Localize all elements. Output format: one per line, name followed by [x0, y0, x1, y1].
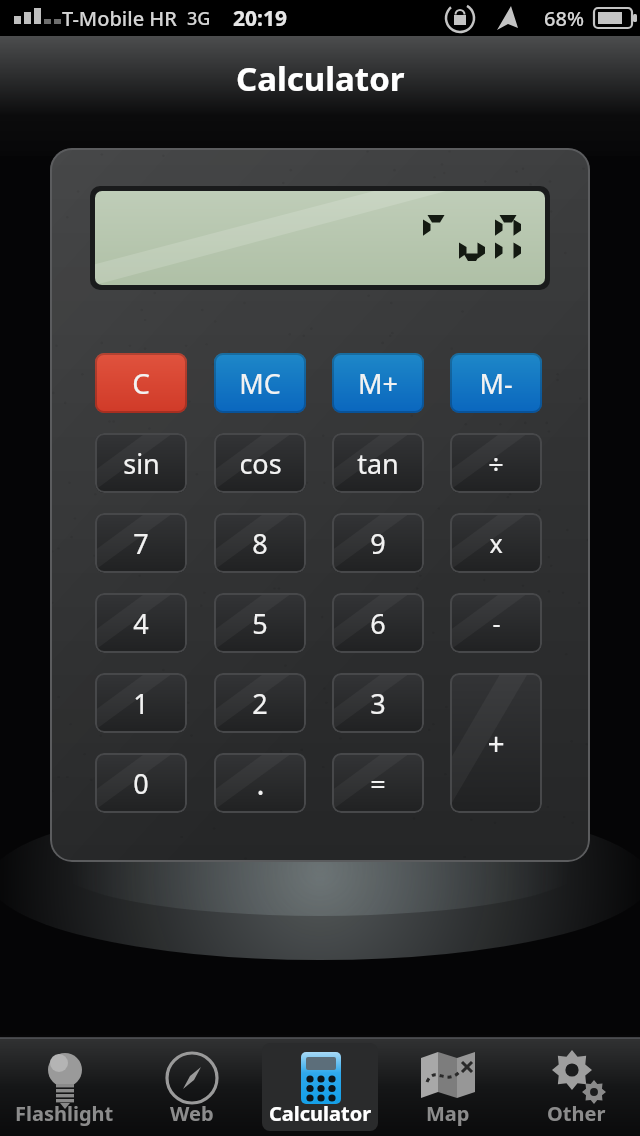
button[interactable]: MC	[214, 353, 306, 413]
staticText: cos	[239, 445, 282, 482]
staticText: Map	[426, 1100, 470, 1127]
staticText: 3	[370, 685, 386, 722]
staticText: +	[487, 723, 505, 764]
staticText: =	[370, 765, 386, 802]
staticText: 2	[252, 685, 268, 722]
button[interactable]: 2	[214, 673, 306, 733]
staticText: x	[489, 526, 503, 560]
button[interactable]: Calculator	[262, 1043, 378, 1131]
button[interactable]: 0	[95, 753, 187, 813]
staticText: sin	[123, 445, 160, 482]
staticText: Other	[547, 1100, 606, 1127]
button[interactable]: cos	[214, 433, 306, 493]
button[interactable]: 5	[214, 593, 306, 653]
button[interactable]: 7	[95, 513, 187, 573]
button[interactable]: 3	[332, 673, 424, 733]
staticText: 68%	[544, 5, 584, 32]
button[interactable]: tan	[332, 433, 424, 493]
button[interactable]: x	[450, 513, 542, 573]
button[interactable]: Flashlight	[6, 1043, 122, 1131]
staticText: Flashlight	[15, 1100, 114, 1127]
button[interactable]: 4	[95, 593, 187, 653]
staticText: 20:19	[233, 4, 287, 33]
button[interactable]: =	[332, 753, 424, 813]
staticText: M+	[358, 365, 398, 402]
staticText: M-	[479, 365, 513, 402]
button[interactable]: Other	[518, 1043, 634, 1131]
staticText: Calculator	[236, 56, 405, 101]
staticText: .	[256, 763, 265, 804]
staticText: 8	[252, 525, 268, 562]
staticText: 0	[133, 765, 149, 802]
button[interactable]: 1	[95, 673, 187, 733]
button[interactable]: .	[214, 753, 306, 813]
staticText: ÷	[488, 445, 504, 482]
staticText: Web	[170, 1100, 214, 1127]
staticText: T-Mobile HR	[62, 5, 177, 32]
button[interactable]: ÷	[450, 433, 542, 493]
staticText: 1	[133, 685, 149, 722]
staticText: 9	[370, 525, 386, 562]
button[interactable]: M-	[450, 353, 542, 413]
button[interactable]: +	[450, 673, 542, 813]
button[interactable]: sin	[95, 433, 187, 493]
staticText: C	[132, 364, 150, 402]
button[interactable]: -	[450, 593, 542, 653]
staticText: tan	[357, 445, 399, 482]
button[interactable]: 8	[214, 513, 306, 573]
staticText: MC	[239, 365, 281, 402]
staticText: 4	[133, 605, 149, 642]
staticText: 7	[133, 525, 149, 562]
staticText: 6	[370, 605, 386, 642]
staticText: Calculator	[269, 1100, 372, 1127]
button[interactable]: C	[95, 353, 187, 413]
button[interactable]: Map	[390, 1043, 506, 1131]
button[interactable]: 9	[332, 513, 424, 573]
staticText: 3G	[187, 6, 211, 31]
staticText: -	[492, 606, 501, 640]
button[interactable]: M+	[332, 353, 424, 413]
staticText: 5	[252, 605, 268, 642]
button[interactable]: 6	[332, 593, 424, 653]
button[interactable]: Web	[134, 1043, 250, 1131]
